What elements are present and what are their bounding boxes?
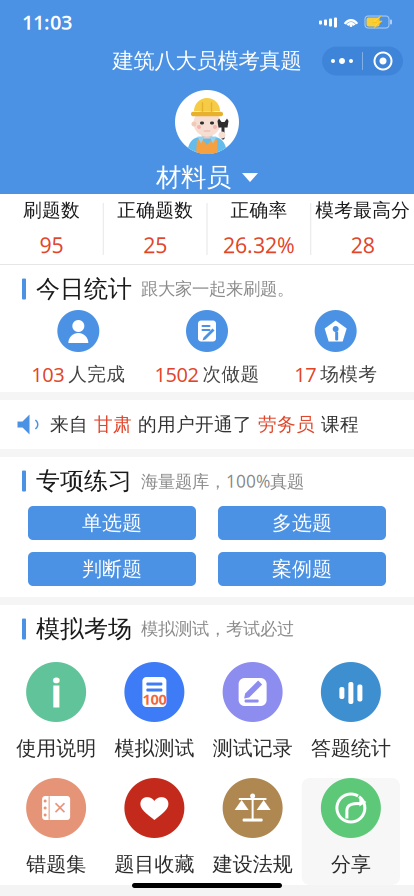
staticText: ✕: [53, 798, 68, 818]
staticText: 25: [143, 231, 167, 259]
button[interactable]: 多选题: [218, 506, 386, 540]
staticText: 模拟测试，考试必过: [141, 618, 294, 640]
staticText: 103: [31, 361, 64, 388]
staticText: 单选题: [82, 511, 142, 535]
button[interactable]: 测试记录: [203, 662, 302, 769]
staticText: 28: [351, 231, 375, 259]
button[interactable]: 答题统计: [302, 662, 400, 769]
staticText: 100: [142, 689, 166, 709]
staticText: 刷题数: [23, 199, 80, 222]
staticText: 1502: [154, 361, 198, 388]
button[interactable]: More: [322, 46, 403, 75]
staticText: 多选题: [272, 511, 332, 535]
staticText: 今日统计: [36, 274, 132, 304]
staticText: 甘肃: [94, 413, 132, 436]
staticText: 跟大家一起来刷题。: [141, 278, 294, 300]
staticText: ⚡: [369, 15, 384, 29]
button[interactable]: 题目收藏: [105, 778, 203, 885]
button[interactable]: 案例题: [218, 552, 386, 586]
staticText: 建设法规: [213, 852, 293, 877]
button[interactable]: 建设法规: [203, 778, 302, 885]
button[interactable]: 材料员: [156, 78, 258, 193]
staticText: 来自: [50, 413, 94, 436]
staticText: 场模考: [320, 363, 377, 386]
staticText: 课程: [315, 413, 359, 436]
staticText: 11:03: [22, 9, 72, 35]
staticText: 专项练习: [36, 466, 132, 496]
staticText: 答题统计: [311, 736, 391, 761]
staticText: 95: [39, 231, 63, 259]
button[interactable]: 分享: [302, 778, 400, 885]
staticText: 正确率: [230, 199, 287, 222]
staticText: 测试记录: [213, 736, 293, 761]
button[interactable]: i: [7, 662, 105, 769]
staticText: 次做题: [202, 363, 259, 386]
staticText: 人完成: [68, 363, 125, 386]
button[interactable]: 判断题: [28, 552, 196, 586]
staticText: 建筑八大员模考真题: [112, 48, 301, 74]
button[interactable]: 单选题: [28, 506, 196, 540]
staticText: 使用说明: [16, 736, 96, 761]
staticText: 模拟考场: [36, 614, 132, 644]
button[interactable]: ✕: [7, 778, 105, 885]
staticText: 的用户开通了: [132, 413, 258, 436]
staticText: 判断题: [82, 557, 142, 581]
staticText: 材料员: [156, 162, 231, 193]
button[interactable]: 100: [105, 662, 203, 769]
staticText: 劳务员: [258, 413, 315, 436]
staticText: 17: [294, 361, 316, 388]
staticText: 分享: [331, 852, 371, 877]
staticText: 题目收藏: [114, 852, 194, 877]
staticText: i: [50, 665, 62, 718]
staticText: 错题集: [26, 852, 86, 877]
staticText: 案例题: [272, 557, 332, 581]
staticText: 海量题库，100%真题: [141, 469, 304, 492]
staticText: 模考最高分: [315, 199, 410, 222]
staticText: 26.32%: [223, 231, 295, 259]
staticText: 模拟测试: [114, 736, 194, 761]
staticText: 正确题数: [117, 199, 193, 222]
